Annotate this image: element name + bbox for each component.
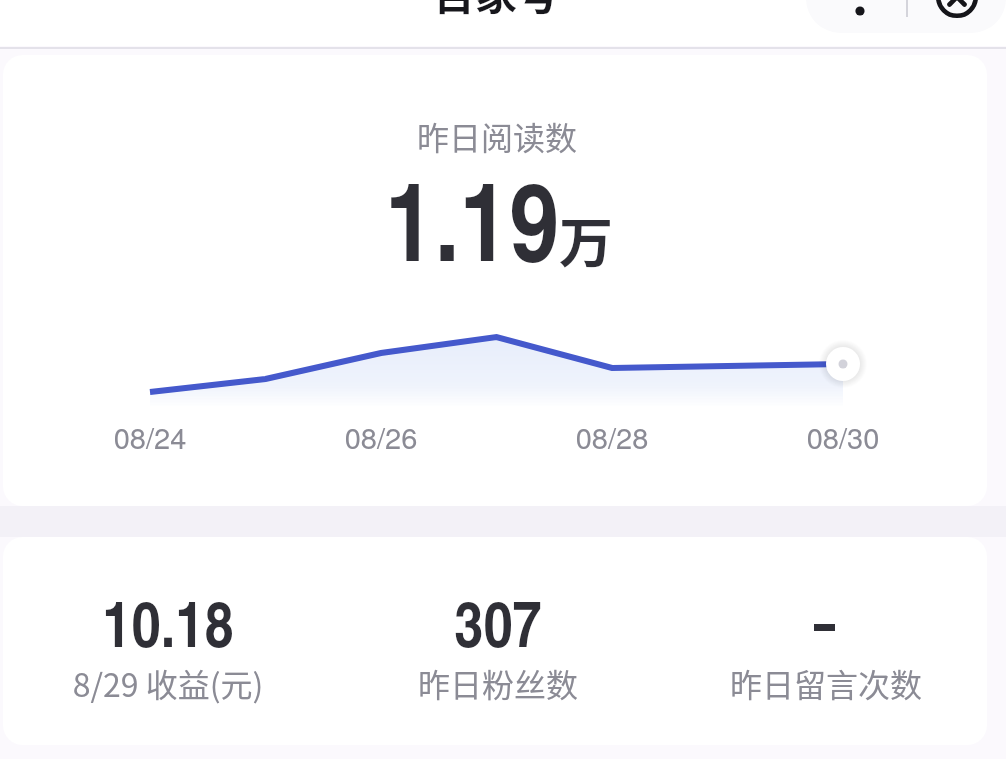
button[interactable]: 昨日留言次数 [662,570,990,745]
staticText: 8/29 收益(元) [4,660,332,706]
staticText: 1.19 [385,141,559,295]
staticText: 万 [559,200,613,278]
staticText: 307 [334,576,662,666]
staticText: 昨日留言次数 [662,660,990,706]
staticText [662,576,990,666]
staticText: 昨日阅读数 [247,113,747,159]
staticText: 昨日粉丝数 [334,660,662,706]
button[interactable]: 10.18 [4,570,332,745]
staticText: 08/26 [131,416,631,458]
button[interactable]: 307 [334,570,662,745]
button[interactable] [3,55,987,506]
staticText: 10.18 [4,576,332,666]
staticText: 08/30 [593,416,1006,458]
button[interactable]: More options [824,0,896,33]
staticText: 百家号 [246,0,746,22]
staticText: 08/24 [0,416,400,458]
button[interactable]: Close [920,0,994,33]
staticText: 08/28 [362,416,862,458]
